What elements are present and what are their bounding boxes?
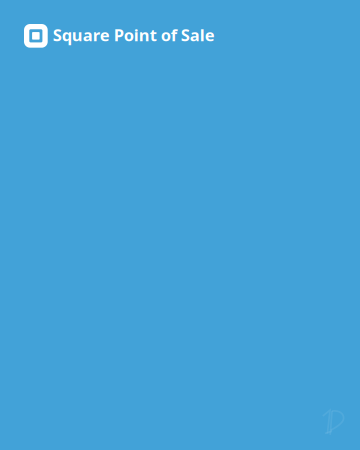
- staticText: Square Point of Sale: [53, 24, 215, 46]
